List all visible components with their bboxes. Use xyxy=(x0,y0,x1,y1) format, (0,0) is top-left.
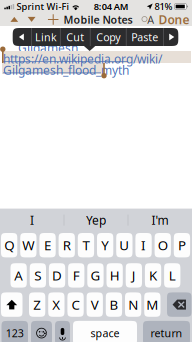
button[interactable]: Copy xyxy=(91,28,126,46)
staticText: M xyxy=(146,296,158,313)
staticText: K xyxy=(149,266,157,284)
staticText: C xyxy=(72,296,80,313)
button[interactable]: space xyxy=(73,321,137,342)
staticText: 123 xyxy=(6,326,24,340)
staticText: V xyxy=(91,296,99,313)
staticText: space xyxy=(90,326,119,340)
button[interactable]: X xyxy=(48,292,64,317)
staticText: Link xyxy=(35,30,57,44)
button[interactable]: S xyxy=(30,263,46,288)
staticText: W xyxy=(22,236,34,254)
staticText: E xyxy=(44,236,51,254)
staticText: Y xyxy=(101,236,109,254)
button[interactable]: A xyxy=(10,263,27,288)
staticText: F xyxy=(73,266,80,284)
staticText: Paste xyxy=(131,30,158,44)
button[interactable]: Shift xyxy=(1,292,22,317)
button[interactable]: N xyxy=(125,292,141,317)
button[interactable]: 123 xyxy=(1,321,28,342)
button[interactable]: Cut xyxy=(61,28,90,46)
staticText: J xyxy=(132,266,136,284)
button[interactable]: P xyxy=(174,233,190,257)
button[interactable]: I xyxy=(0,209,64,231)
button[interactable]: Next note xyxy=(24,13,40,26)
staticText: L xyxy=(169,266,176,284)
staticText: Yep xyxy=(86,212,106,228)
button[interactable]: V xyxy=(87,292,103,317)
staticText: H xyxy=(110,266,120,284)
button[interactable]: Mobile Notes xyxy=(63,13,133,26)
staticText: Sprint Wi-Fi xyxy=(16,0,69,13)
staticText: Gilgamesh_flood_myth xyxy=(3,62,129,78)
button[interactable]: G xyxy=(87,263,104,288)
staticText: U xyxy=(119,236,129,254)
staticText: I'm xyxy=(151,212,168,228)
staticText: R xyxy=(63,236,71,254)
staticText: S xyxy=(34,266,41,284)
button[interactable]: Done xyxy=(157,13,191,26)
staticText: T xyxy=(82,236,89,254)
staticText: D xyxy=(52,266,62,284)
button[interactable]: T xyxy=(78,233,94,257)
staticText: Q xyxy=(4,236,14,254)
staticText: N xyxy=(128,296,138,313)
button[interactable]: Previous note xyxy=(6,13,22,26)
button[interactable]: Emoji xyxy=(31,321,52,342)
button[interactable]: Dictate xyxy=(55,321,70,342)
button[interactable]: Yep xyxy=(64,209,128,231)
button[interactable]: F xyxy=(68,263,84,288)
button[interactable]: M xyxy=(144,292,160,317)
button[interactable]: Link xyxy=(32,28,60,46)
button[interactable]: C xyxy=(67,292,84,317)
button[interactable]: Q xyxy=(1,233,17,257)
button[interactable]: U xyxy=(116,233,132,257)
button[interactable]: B xyxy=(106,292,122,317)
staticText: Copy xyxy=(96,30,120,44)
staticText: return xyxy=(150,326,182,340)
button[interactable]: I xyxy=(135,233,152,257)
staticText: I xyxy=(141,236,146,254)
staticText: 8:04 AM xyxy=(94,0,129,13)
staticText: https://en.wikipedia.org/wiki/ xyxy=(3,51,162,67)
staticText: G xyxy=(90,266,100,284)
button[interactable]: J xyxy=(126,263,142,288)
staticText: Mobile Notes xyxy=(63,12,132,27)
button[interactable]: W xyxy=(20,233,36,257)
button[interactable]: Format xyxy=(140,13,156,26)
button[interactable]: I'm xyxy=(128,209,192,231)
staticText: 81% xyxy=(154,0,172,13)
button[interactable]: More menu items xyxy=(164,28,179,46)
staticText: X xyxy=(52,296,60,313)
staticText: O xyxy=(158,236,168,254)
staticText: Done xyxy=(158,11,189,27)
button[interactable]: L xyxy=(164,263,180,288)
button[interactable]: O xyxy=(155,233,171,257)
staticText: P xyxy=(178,236,186,254)
button[interactable]: D xyxy=(49,263,65,288)
button[interactable]: Paste xyxy=(127,28,163,46)
staticText: A xyxy=(14,266,23,284)
button[interactable]: Delete xyxy=(167,292,191,317)
staticText: B xyxy=(109,296,118,313)
button[interactable]: return xyxy=(143,321,190,342)
button[interactable]: E xyxy=(39,233,56,257)
staticText: A xyxy=(147,13,154,27)
button[interactable]: New note xyxy=(45,13,61,26)
button[interactable]: Previous menu page xyxy=(11,28,31,46)
button[interactable]: Z xyxy=(29,292,45,317)
staticText: Gilgamesh xyxy=(18,40,78,56)
button[interactable]: R xyxy=(59,233,75,257)
staticText: Z xyxy=(33,296,41,313)
button[interactable]: H xyxy=(106,263,123,288)
staticText: I xyxy=(30,212,34,228)
button[interactable]: K xyxy=(145,263,161,288)
button[interactable]: Y xyxy=(97,233,113,257)
staticText: Cut xyxy=(66,30,84,44)
